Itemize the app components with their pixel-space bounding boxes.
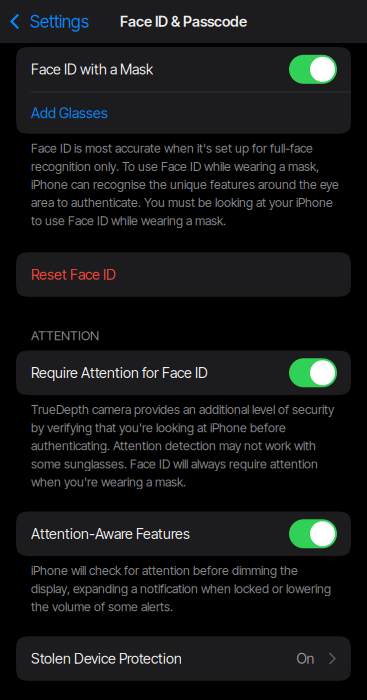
staticText: Face ID is most accurate when it's set u… (31, 141, 339, 228)
staticText: Face ID & Passcode (120, 13, 247, 30)
staticText: Add Glasses (31, 104, 108, 122)
staticText: iPhone will check for attention before d… (31, 563, 331, 614)
button[interactable]: Add Glasses (16, 92, 351, 134)
button[interactable]: Face ID with a Mask (16, 47, 351, 92)
staticText: Face ID with a Mask (31, 61, 153, 78)
staticText: Settings (30, 11, 89, 32)
button[interactable]: Attention-Aware Features (16, 511, 351, 556)
staticText: TrueDepth camera provides an additional … (31, 402, 334, 489)
staticText: Stolen Device Protection (31, 650, 182, 667)
button[interactable]: Require Attention for Face ID (16, 350, 351, 395)
staticText: Reset Face ID (31, 266, 116, 283)
staticText: ATTENTION (31, 328, 99, 343)
button[interactable]: Stolen Device Protection (16, 636, 351, 681)
button[interactable]: Settings (0, 0, 110, 43)
button[interactable]: Reset Face ID (16, 252, 351, 297)
staticText: On (296, 650, 314, 667)
staticText: Attention-Aware Features (31, 525, 190, 542)
staticText: Require Attention for Face ID (31, 364, 208, 381)
